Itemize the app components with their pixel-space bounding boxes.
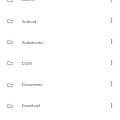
staticText: DCIM (22, 61, 32, 66)
button[interactable] (0, 31, 120, 52)
staticText: Documents (22, 82, 43, 87)
staticText: Alarms (22, 0, 35, 2)
button[interactable]: More options (104, 10, 117, 31)
button[interactable]: More options (104, 31, 117, 52)
button[interactable] (0, 52, 120, 73)
button[interactable] (0, 73, 120, 94)
staticText: Android (22, 19, 36, 24)
button[interactable] (0, 95, 120, 116)
button[interactable] (0, 10, 120, 31)
button[interactable] (0, 0, 120, 10)
staticText: Audiobooks (22, 40, 44, 45)
button[interactable]: More options (104, 73, 117, 94)
button[interactable]: More options (104, 52, 117, 73)
staticText: Download (22, 103, 40, 108)
button[interactable]: More options (104, 0, 117, 10)
button[interactable]: More options (104, 95, 117, 116)
